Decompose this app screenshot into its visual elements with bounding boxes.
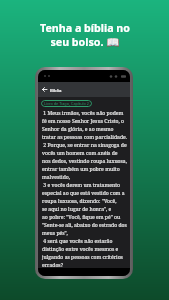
staticText: fé em nosso Senhor Jesus Cristo, o (42, 118, 124, 125)
staticText: ao pobre: "Você, fique em pé" ou (42, 214, 121, 221)
staticText: vocês um homem com anéis de ouro (42, 150, 129, 157)
staticText: nos dedos, vestindo roupa luxuosa, e (42, 158, 129, 165)
staticText: Senhor da glória, e ao mesmo tempo (42, 126, 129, 133)
staticText: errados? (42, 262, 64, 268)
staticText: meus pés", (42, 230, 68, 237)
staticText: Tenha a bíblia no seu bolso. 📖 (40, 21, 130, 49)
staticText: 4 será que vocês não estarão fazendo (42, 238, 129, 245)
staticText: Livro de Tiago, Capítulo 2 (44, 101, 89, 106)
staticText: julgando as pessoas com critérios (42, 254, 123, 261)
staticText: distinção entre vocês mesmos e (42, 246, 119, 253)
staticText: 1 Meus irmãos, vocês não podem ter (42, 110, 129, 117)
staticText: tratar as pessoas com parcialidade. (42, 134, 128, 141)
staticText: 2 Porque, se entrar na sinagoga de (42, 142, 127, 149)
staticText: entrar também um pobre muito (42, 166, 120, 173)
staticText: roupa luxuosa, dizendo: "Você, sente- (42, 198, 129, 205)
staticText: 3 e vocês derem um tratamento (42, 182, 120, 189)
staticText: se aqui no lugar de honra", e disserem (42, 206, 129, 213)
button[interactable]: Livro de Tiago, Capítulo 2 (41, 100, 92, 107)
staticText: especial ao que está vestido com a (42, 190, 125, 197)
staticText: malvestido, (42, 174, 70, 181)
staticText: "Sente-se ali, abaixo do estrado dos (42, 222, 127, 229)
staticText: Bíblia (50, 87, 62, 93)
button[interactable]: Back (42, 87, 47, 92)
